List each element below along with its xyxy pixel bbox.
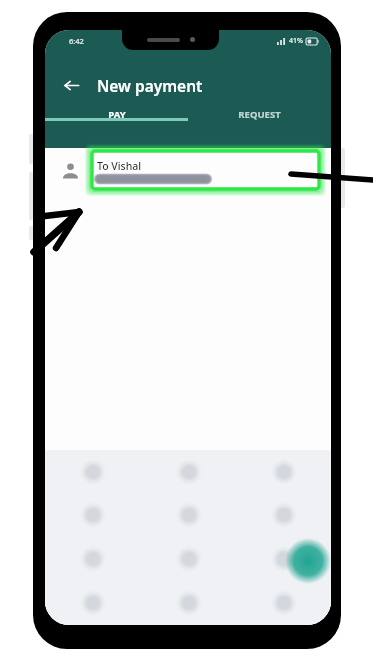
button[interactable]: Key 11 xyxy=(141,581,236,625)
button[interactable]: To Vishal xyxy=(45,148,331,192)
button[interactable]: Key 2 xyxy=(141,450,236,493)
button[interactable]: Key 10 xyxy=(45,581,141,625)
staticText: New payment xyxy=(97,75,203,96)
staticText: To Vishal xyxy=(97,159,142,173)
button[interactable]: Key 5 xyxy=(141,493,236,537)
button[interactable]: Key 12 xyxy=(236,581,331,625)
staticText: 41% xyxy=(289,36,303,46)
button[interactable]: PAY xyxy=(45,108,188,121)
button[interactable]: Key 3 xyxy=(236,450,331,493)
button[interactable]: Key 7 xyxy=(45,537,141,581)
staticText: REQUEST xyxy=(238,108,281,121)
staticText: 6:42 xyxy=(69,36,84,46)
button[interactable]: REQUEST xyxy=(188,108,331,121)
button[interactable]: Back xyxy=(53,67,89,103)
button[interactable]: Key 8 xyxy=(141,537,236,581)
button[interactable]: Send payment xyxy=(285,538,331,584)
staticText: PAY xyxy=(108,108,126,121)
button[interactable]: Key 6 xyxy=(236,493,331,537)
button[interactable]: Key 4 xyxy=(45,493,141,537)
button[interactable]: Key 1 xyxy=(45,450,141,493)
button[interactable]: Key 9 xyxy=(236,537,331,581)
